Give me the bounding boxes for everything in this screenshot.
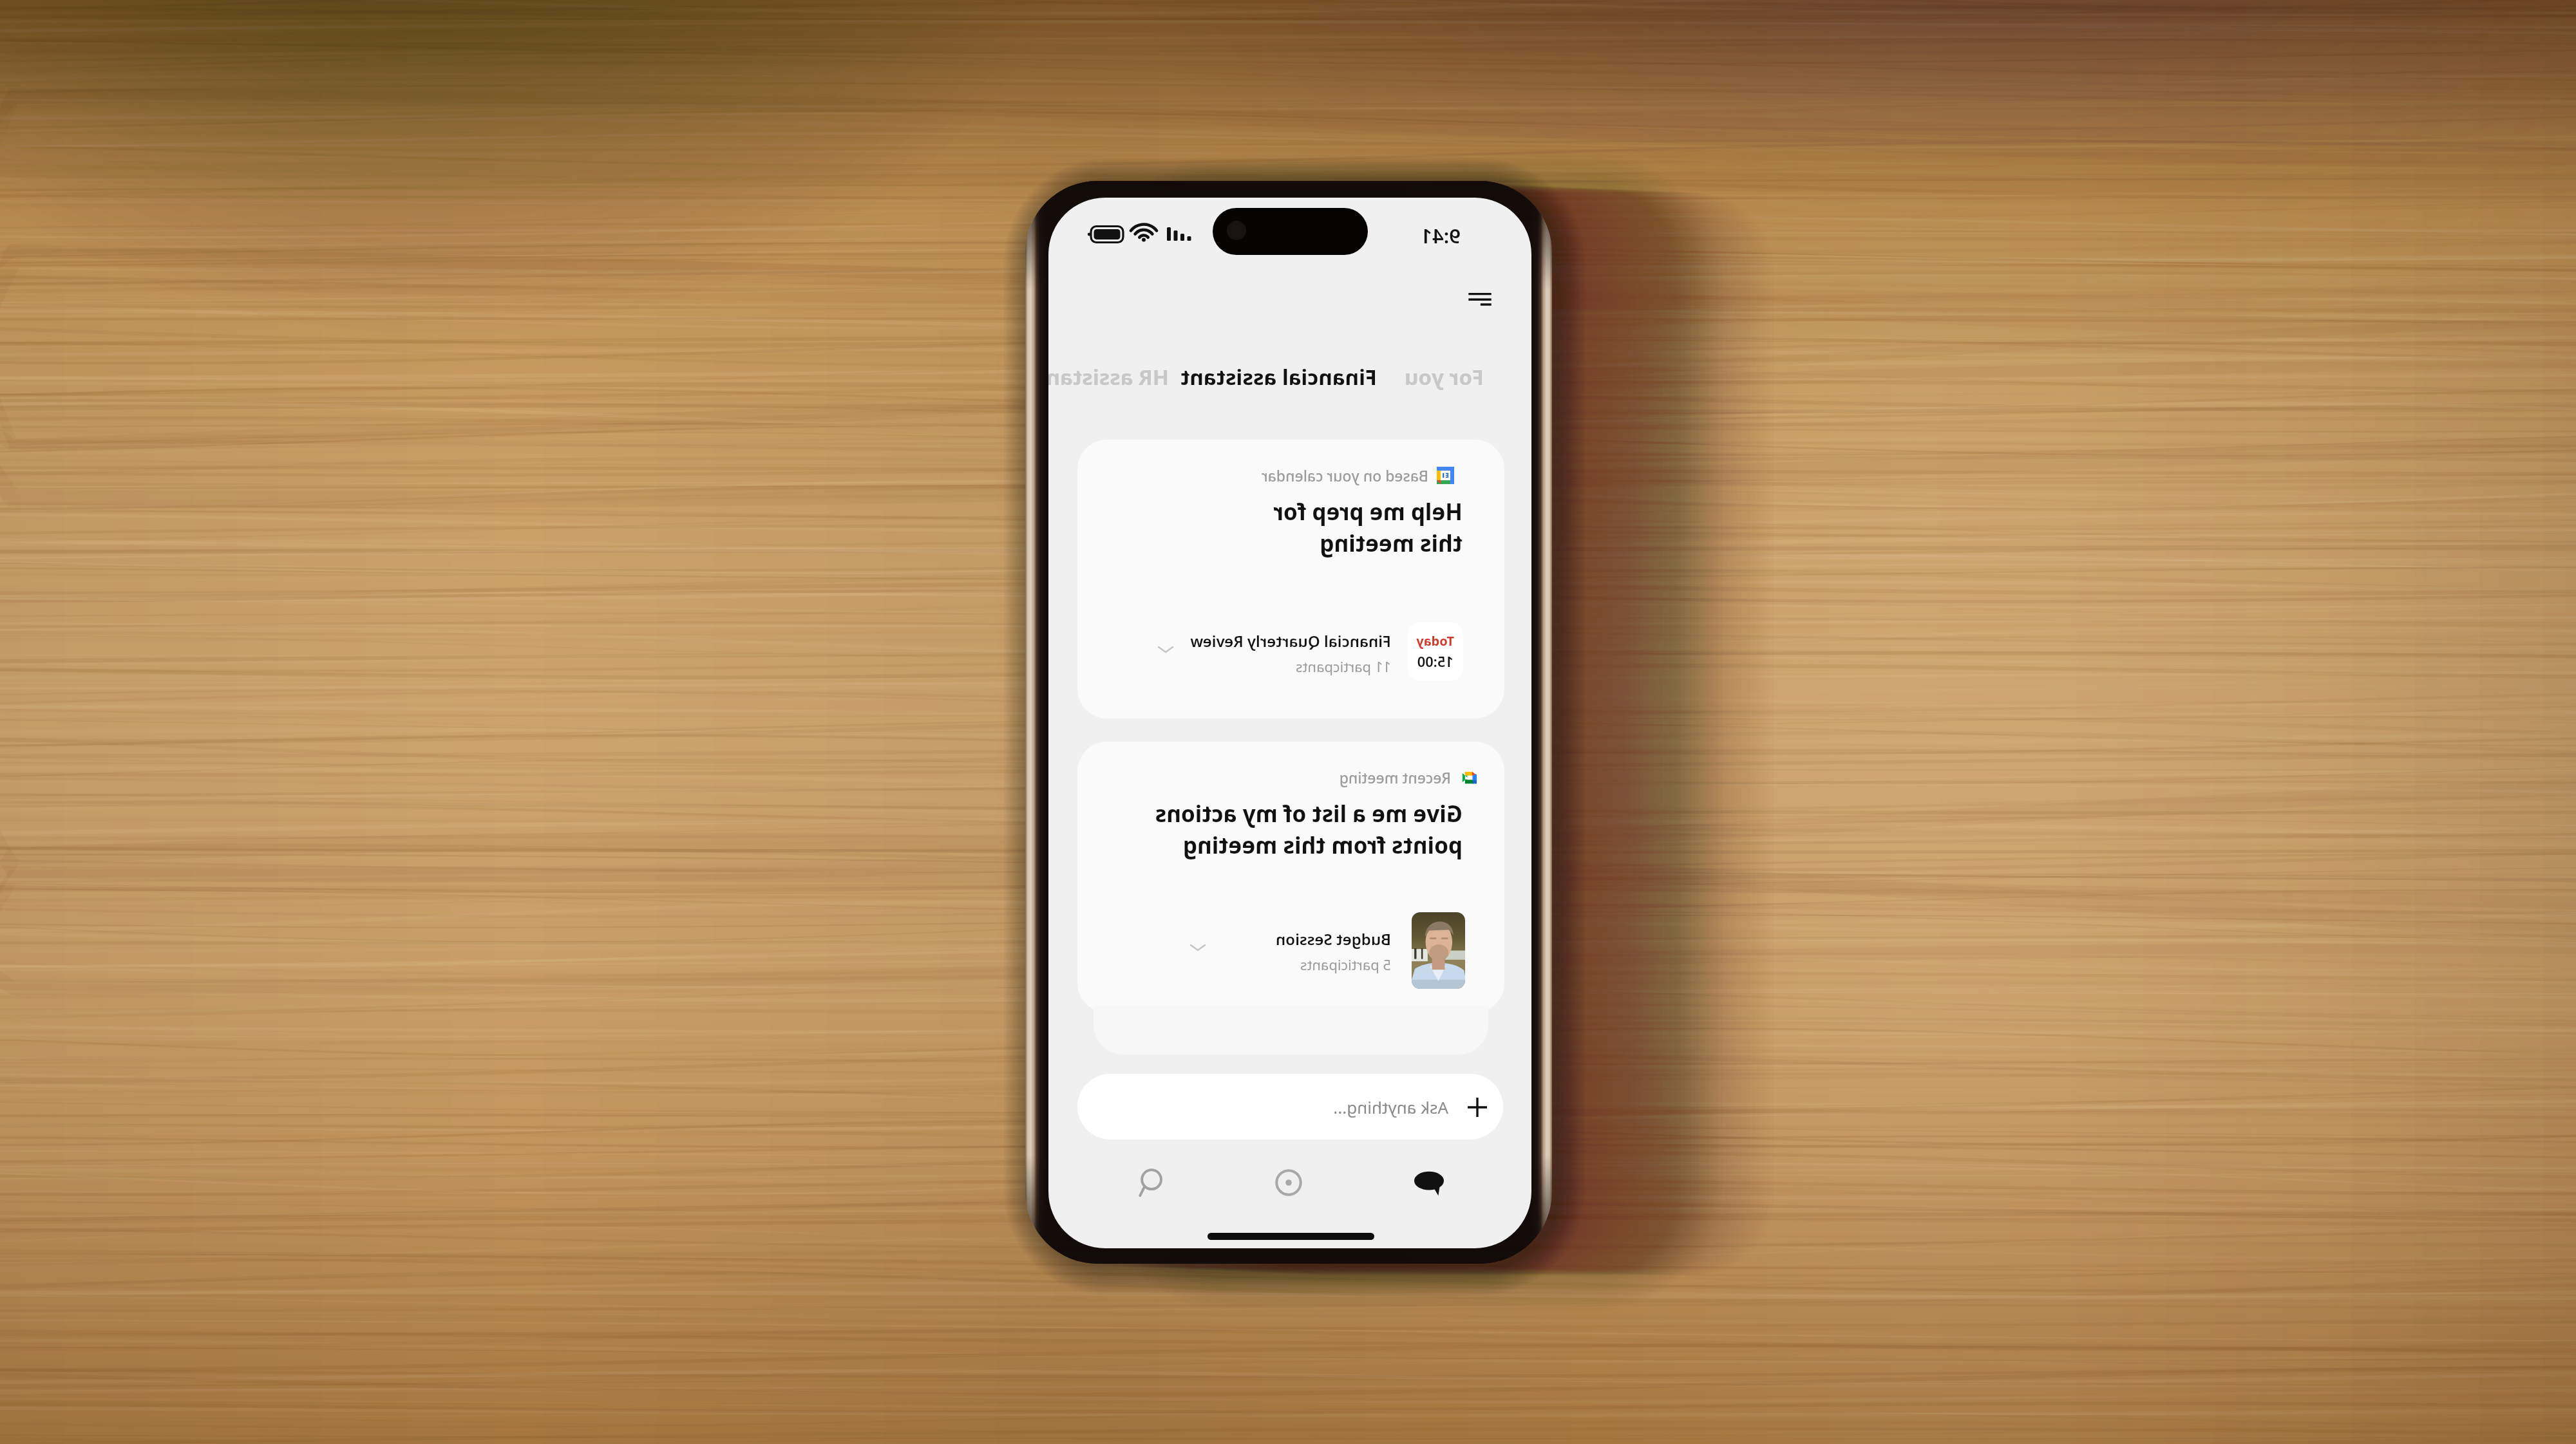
staticText: Recent meeting <box>1339 767 1451 787</box>
button[interactable]: Recent meeting <box>1077 742 1504 1013</box>
staticText: 15:00 <box>1417 652 1454 671</box>
staticText: HR assistant <box>1048 362 1169 391</box>
button[interactable]: Record <box>1254 1148 1323 1217</box>
staticText: 5 participants <box>1300 955 1391 974</box>
button[interactable]: Financial assistant <box>1180 362 1377 391</box>
staticText: For you <box>1405 362 1484 391</box>
button[interactable]: Menu <box>1455 276 1504 323</box>
button[interactable]: Chat <box>1394 1148 1464 1217</box>
staticText: Financial assistant <box>1180 362 1377 391</box>
staticText: Financial Quarterly Review <box>1190 630 1391 652</box>
staticText: Ask anything... <box>1333 1096 1448 1118</box>
staticText: Budget Session <box>1275 928 1391 950</box>
staticText: 11 particpants <box>1296 657 1391 676</box>
staticText: Help me prep for this meeting <box>1273 496 1463 558</box>
staticText: Today <box>1416 632 1454 650</box>
button[interactable]: Ask anything... <box>1077 1074 1503 1139</box>
staticText: 9:41 <box>1421 222 1461 249</box>
button[interactable]: HR assistant <box>1048 362 1169 391</box>
button[interactable]: Based on your calendar <box>1077 440 1504 718</box>
staticText: Based on your calendar <box>1261 465 1428 485</box>
button[interactable]: Search <box>1118 1148 1188 1217</box>
button[interactable]: For you <box>1405 362 1484 391</box>
staticText: Give me a list of my actions points from… <box>1155 798 1463 860</box>
